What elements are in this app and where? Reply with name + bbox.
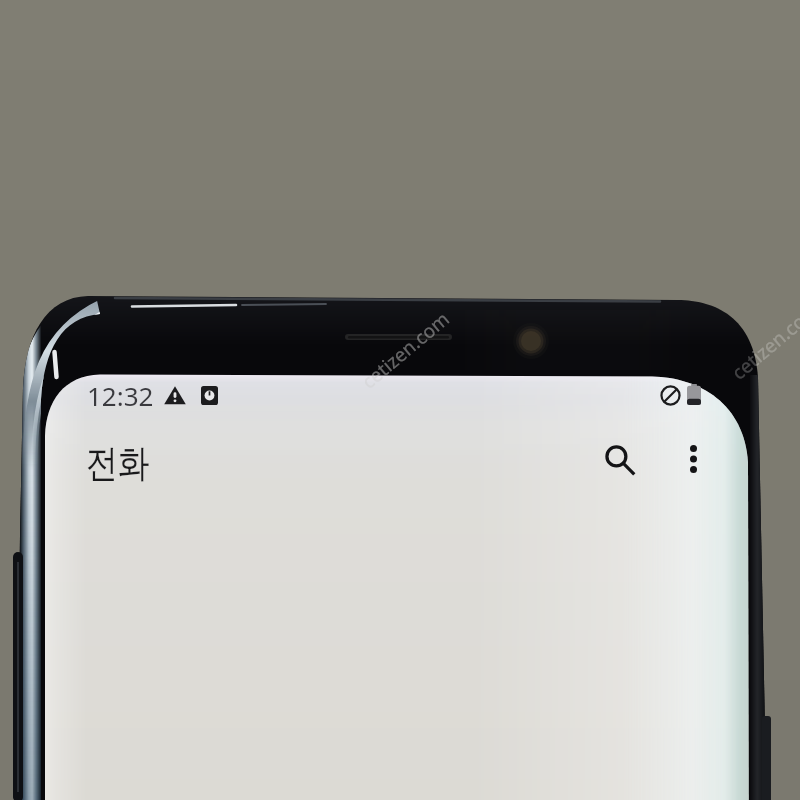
staticText: 전화 [86, 439, 150, 487]
button[interactable]: Search [593, 433, 645, 485]
button[interactable]: More options [667, 433, 719, 485]
button[interactable]: 전화 [60, 424, 310, 500]
staticText: 12:32 [87, 378, 154, 413]
staticText: cetizen.com [726, 297, 800, 385]
staticText: cetizen.com [356, 306, 455, 394]
